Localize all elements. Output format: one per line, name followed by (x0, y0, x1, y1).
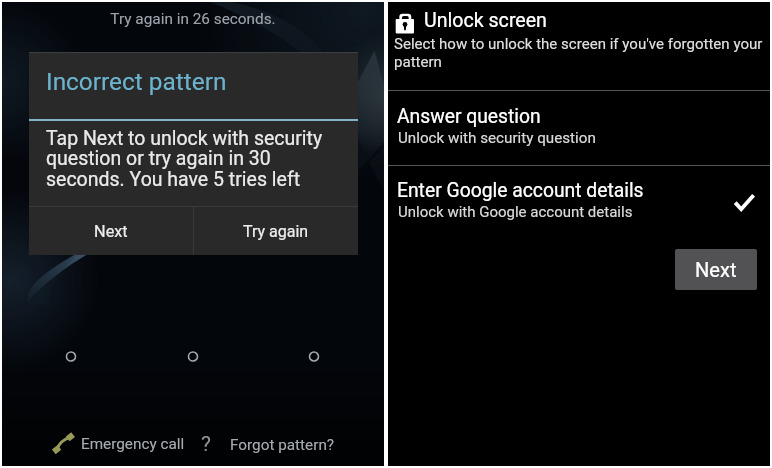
staticText: Next (94, 222, 128, 241)
staticText: Tap Next to unlock with security questio… (46, 127, 323, 191)
other: Selected (732, 190, 756, 214)
button[interactable]: Emergency call (52, 432, 185, 456)
button[interactable]: Enter Google account details (388, 166, 770, 236)
staticText: Try again (243, 222, 309, 241)
staticText: Incorrect pattern (46, 67, 227, 96)
button[interactable]: ? (201, 432, 335, 457)
staticText: Unlock screen (424, 9, 547, 32)
staticText: Select how to unlock the screen if you'v… (394, 35, 763, 71)
staticText: ? (201, 432, 211, 457)
staticText: Emergency call (81, 435, 185, 453)
staticText: Next (695, 258, 737, 282)
staticText: Answer question (397, 105, 541, 128)
staticText: Unlock with Google account details (398, 203, 633, 221)
staticText: Try again in 26 seconds. (2, 10, 384, 28)
button[interactable]: Answer question (388, 91, 770, 165)
button[interactable]: Try again (194, 207, 358, 255)
other: Locked (394, 12, 418, 36)
button[interactable]: Next (675, 249, 757, 290)
other: Emergency call (52, 432, 76, 456)
button[interactable]: Next (29, 207, 193, 255)
staticText: Unlock with security question (398, 129, 596, 147)
staticText: Enter Google account details (397, 179, 644, 202)
staticText: Forgot pattern? (230, 436, 335, 454)
